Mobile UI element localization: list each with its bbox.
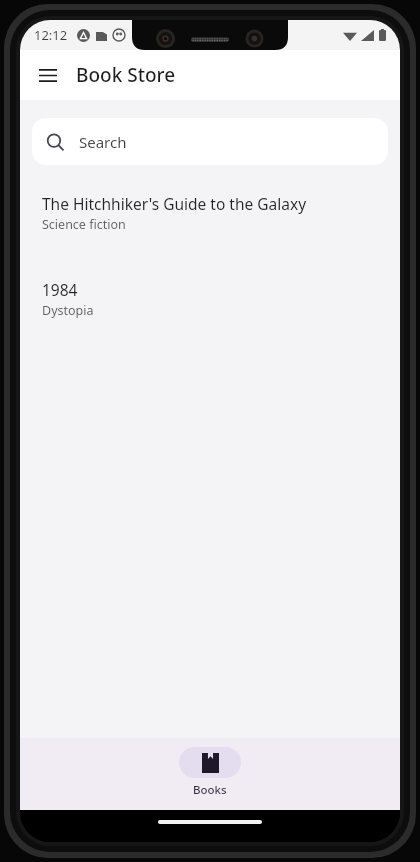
staticText: Book Store xyxy=(76,62,176,88)
staticText: Science fiction xyxy=(42,216,126,233)
button[interactable]: 1984 xyxy=(20,277,400,321)
staticText: Books xyxy=(193,782,227,798)
staticText: 12:12 xyxy=(34,26,68,44)
button[interactable]: Open navigation menu xyxy=(28,55,68,95)
button[interactable]: The Hitchhiker's Guide to the Galaxy xyxy=(20,191,400,235)
staticText: The Hitchhiker's Guide to the Galaxy xyxy=(42,193,307,214)
staticText: 1984 xyxy=(42,279,78,300)
staticText: Dystopia xyxy=(42,302,94,319)
button[interactable]: Search xyxy=(32,118,388,165)
staticText: Search xyxy=(79,132,127,152)
button[interactable]: Books xyxy=(162,738,258,798)
